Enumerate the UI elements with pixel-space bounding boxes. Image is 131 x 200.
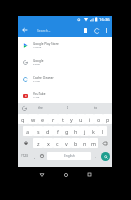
staticText: j [84, 128, 86, 135]
staticText: I [67, 106, 69, 110]
staticText: 11MB [33, 96, 40, 99]
staticText: t [62, 116, 64, 123]
button[interactable]: m [89, 138, 98, 148]
staticText: m [91, 140, 97, 147]
staticText: v [65, 140, 68, 147]
button[interactable]: Emoji [38, 149, 46, 163]
button[interactable]: Recent apps [84, 169, 95, 180]
staticText: Google Play Store [33, 42, 59, 46]
staticText: k [92, 128, 95, 135]
staticText: d [46, 128, 50, 135]
button[interactable]: k [89, 126, 98, 136]
staticText: y [70, 116, 73, 123]
staticText: to [94, 106, 98, 110]
staticText: i [89, 116, 91, 123]
staticText: n [83, 140, 87, 147]
staticText: the [38, 106, 43, 110]
staticText: x [47, 140, 50, 147]
button[interactable]: I [54, 103, 82, 113]
button[interactable]: j [80, 126, 89, 136]
staticText: w [31, 116, 36, 123]
button[interactable]: z [33, 138, 43, 148]
staticText: YouTube [33, 92, 46, 96]
button[interactable]: p [103, 114, 112, 124]
button[interactable]: i [85, 114, 94, 124]
button[interactable]: n [80, 138, 89, 148]
button[interactable]: , [31, 149, 38, 163]
staticText: c [56, 140, 59, 147]
staticText: English [64, 154, 75, 158]
button[interactable]: s [33, 126, 43, 136]
button[interactable]: v [62, 138, 71, 148]
staticText: , [34, 154, 36, 159]
button[interactable]: x [43, 138, 53, 148]
button[interactable]: r [48, 114, 58, 124]
button[interactable]: ?123 [18, 150, 31, 162]
staticText: 16:36 [99, 17, 110, 23]
button[interactable]: YouTube [18, 88, 112, 103]
button[interactable]: Google Play Store [18, 37, 112, 54]
button[interactable]: English [47, 152, 91, 160]
button[interactable]: Shift [18, 137, 33, 149]
button[interactable]: Back [18, 23, 32, 37]
staticText: s [37, 128, 40, 135]
button[interactable]: l [98, 126, 107, 136]
button[interactable]: More options [102, 26, 111, 35]
staticText: u [79, 116, 83, 123]
button[interactable]: Cache Cleaner [18, 71, 112, 88]
button[interactable]: w [28, 114, 38, 124]
button[interactable]: t [58, 114, 67, 124]
button[interactable]: o [94, 114, 103, 124]
button[interactable]: a [23, 126, 33, 136]
staticText: l [102, 128, 104, 135]
button[interactable]: Home [60, 169, 71, 180]
staticText: b [74, 140, 78, 147]
button[interactable]: to [82, 103, 110, 113]
staticText: 2.1MB [33, 80, 40, 83]
staticText: Cache Cleaner [33, 76, 54, 80]
staticText: Search... [37, 28, 51, 33]
button[interactable]: u [76, 114, 85, 124]
button[interactable]: e [38, 114, 48, 124]
staticText: 14.5MB [33, 46, 42, 49]
button[interactable]: c [53, 138, 62, 148]
button[interactable]: q [18, 114, 28, 124]
button[interactable]: Refresh [91, 25, 102, 36]
button[interactable]: Google [22, 106, 27, 111]
staticText: ?123 [21, 154, 28, 158]
button[interactable]: h [71, 126, 80, 136]
button[interactable]: Backspace [98, 137, 112, 149]
button[interactable]: Search [99, 149, 112, 163]
button[interactable]: Google [18, 54, 112, 71]
button[interactable]: the [27, 103, 54, 113]
button[interactable]: f [53, 126, 62, 136]
staticText: a [26, 128, 30, 135]
button[interactable]: Back [36, 169, 47, 180]
button[interactable]: y [67, 114, 76, 124]
staticText: z [37, 140, 40, 147]
button[interactable]: Clear [80, 25, 91, 36]
staticText: e [41, 116, 45, 123]
staticText: r [52, 116, 55, 123]
staticText: g [65, 128, 69, 135]
staticText: o [97, 116, 101, 123]
staticText: Google [33, 59, 44, 63]
staticText: h [74, 128, 78, 135]
button[interactable]: b [71, 138, 80, 148]
staticText: q [21, 116, 25, 123]
staticText: f [57, 128, 59, 135]
button[interactable]: d [43, 126, 53, 136]
staticText: p [106, 116, 110, 123]
staticText: 8.6MB [33, 63, 40, 66]
button[interactable]: g [62, 126, 71, 136]
staticText: . [95, 154, 97, 159]
